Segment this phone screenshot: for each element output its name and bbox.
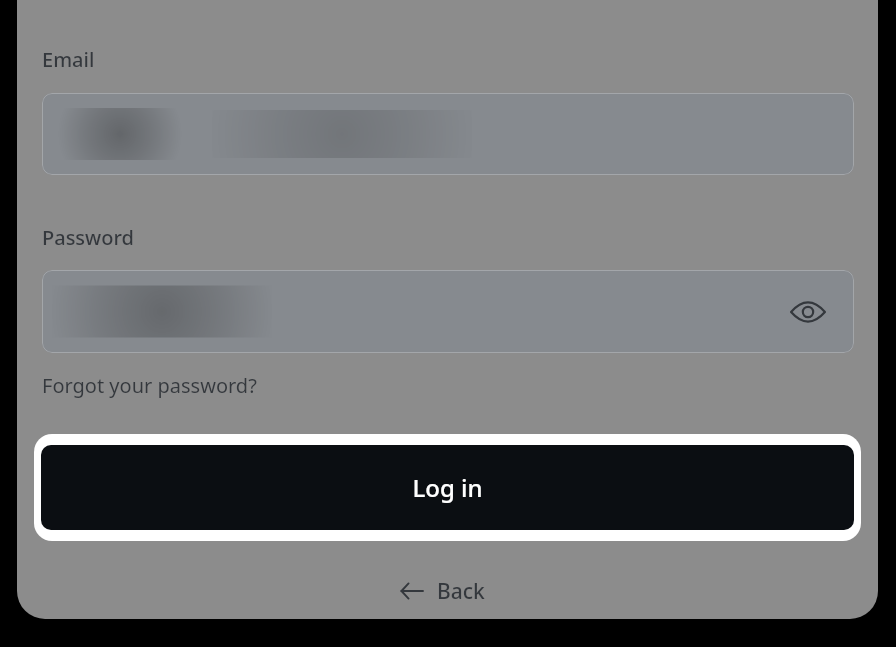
staticText: Forgot your password? — [42, 372, 257, 399]
staticText: Log in — [412, 471, 483, 504]
button[interactable] — [42, 270, 854, 353]
staticText: Back — [437, 577, 485, 606]
button[interactable]: Back — [385, 566, 501, 616]
button[interactable] — [42, 93, 854, 175]
button[interactable]: Show password — [778, 282, 838, 342]
staticText: Email — [42, 46, 95, 73]
button[interactable]: Log in — [41, 445, 854, 530]
button[interactable]: Forgot your password? — [42, 372, 257, 399]
staticText: Password — [42, 224, 134, 251]
